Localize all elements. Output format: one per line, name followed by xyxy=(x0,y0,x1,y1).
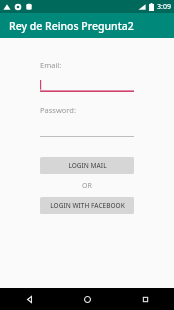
staticText: Password: xyxy=(40,105,76,115)
staticText: LOGIN WITH FACEBOOK xyxy=(50,201,125,210)
button[interactable]: LOGIN MAIL xyxy=(40,157,134,174)
button[interactable]: Home xyxy=(58,288,116,310)
button[interactable]: Recent apps xyxy=(116,288,174,310)
staticText: Email: xyxy=(40,60,62,70)
button[interactable]: LOGIN WITH FACEBOOK xyxy=(40,197,134,214)
staticText: LOGIN MAIL xyxy=(68,161,107,170)
staticText: 3:09 xyxy=(157,2,171,12)
button[interactable] xyxy=(40,79,134,92)
button[interactable] xyxy=(40,124,134,137)
button[interactable]: Back xyxy=(0,288,58,310)
staticText: Rey de Reinos Pregunta2 xyxy=(9,19,134,33)
staticText: OR xyxy=(82,181,92,191)
